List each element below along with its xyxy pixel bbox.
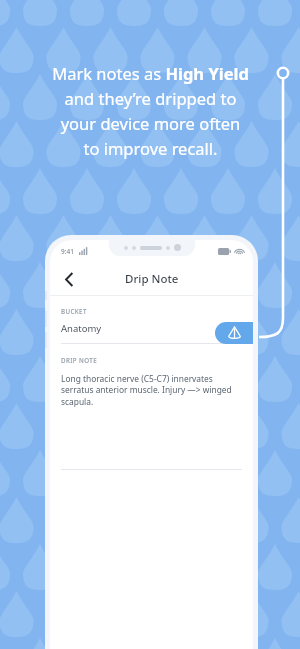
staticText: Mark notes as High Yield and they’re dri… — [52, 62, 249, 159]
staticText: Anatomy — [61, 322, 102, 335]
staticText: DRIP NOTE — [61, 356, 97, 364]
button[interactable]: Drip note — [215, 322, 253, 344]
staticText: 9:41 — [61, 247, 74, 256]
staticText: Drip Note — [125, 271, 179, 287]
staticText: BUCKET — [61, 307, 87, 315]
button[interactable]: Back — [56, 266, 82, 292]
staticText: Long thoracic nerve (C5-C7) innervates s… — [61, 373, 232, 407]
